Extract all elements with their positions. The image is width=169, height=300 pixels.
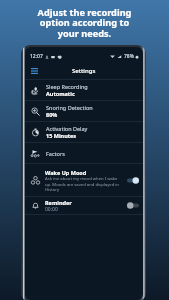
staticText: Automatic — [46, 90, 75, 97]
staticText: Adjust the recording option according to… — [0, 6, 169, 40]
staticText: Factors — [46, 150, 65, 157]
staticText: 15 Minutes — [46, 132, 77, 139]
staticText: Reminder — [45, 199, 72, 206]
staticText: Sleep Recording — [46, 83, 88, 90]
button[interactable]: Menu — [28, 65, 40, 77]
staticText: 12:07 — [30, 53, 43, 60]
button[interactable]: Reminder — [25, 197, 143, 214]
staticText: 80% — [46, 111, 58, 118]
button[interactable]: Wake Up Mood — [25, 164, 143, 196]
staticText: 78% — [124, 53, 134, 60]
button[interactable]: Toggle off — [127, 201, 139, 210]
staticText: Wake Up Mood — [45, 169, 87, 176]
button[interactable]: Factors — [25, 143, 143, 163]
staticText: Settings — [72, 67, 96, 75]
button[interactable]: Sleep Recording — [25, 80, 143, 100]
button[interactable]: Activation Delay — [25, 122, 143, 142]
staticText: Activation Delay — [46, 125, 88, 132]
staticText: Ask me about my mood when I wake up. Moo… — [45, 176, 119, 192]
button[interactable]: Toggle on — [127, 176, 139, 185]
staticText: Snoring Detection — [46, 104, 93, 111]
staticText: 00:00 — [45, 206, 58, 213]
button[interactable]: Snoring Detection — [25, 101, 143, 121]
